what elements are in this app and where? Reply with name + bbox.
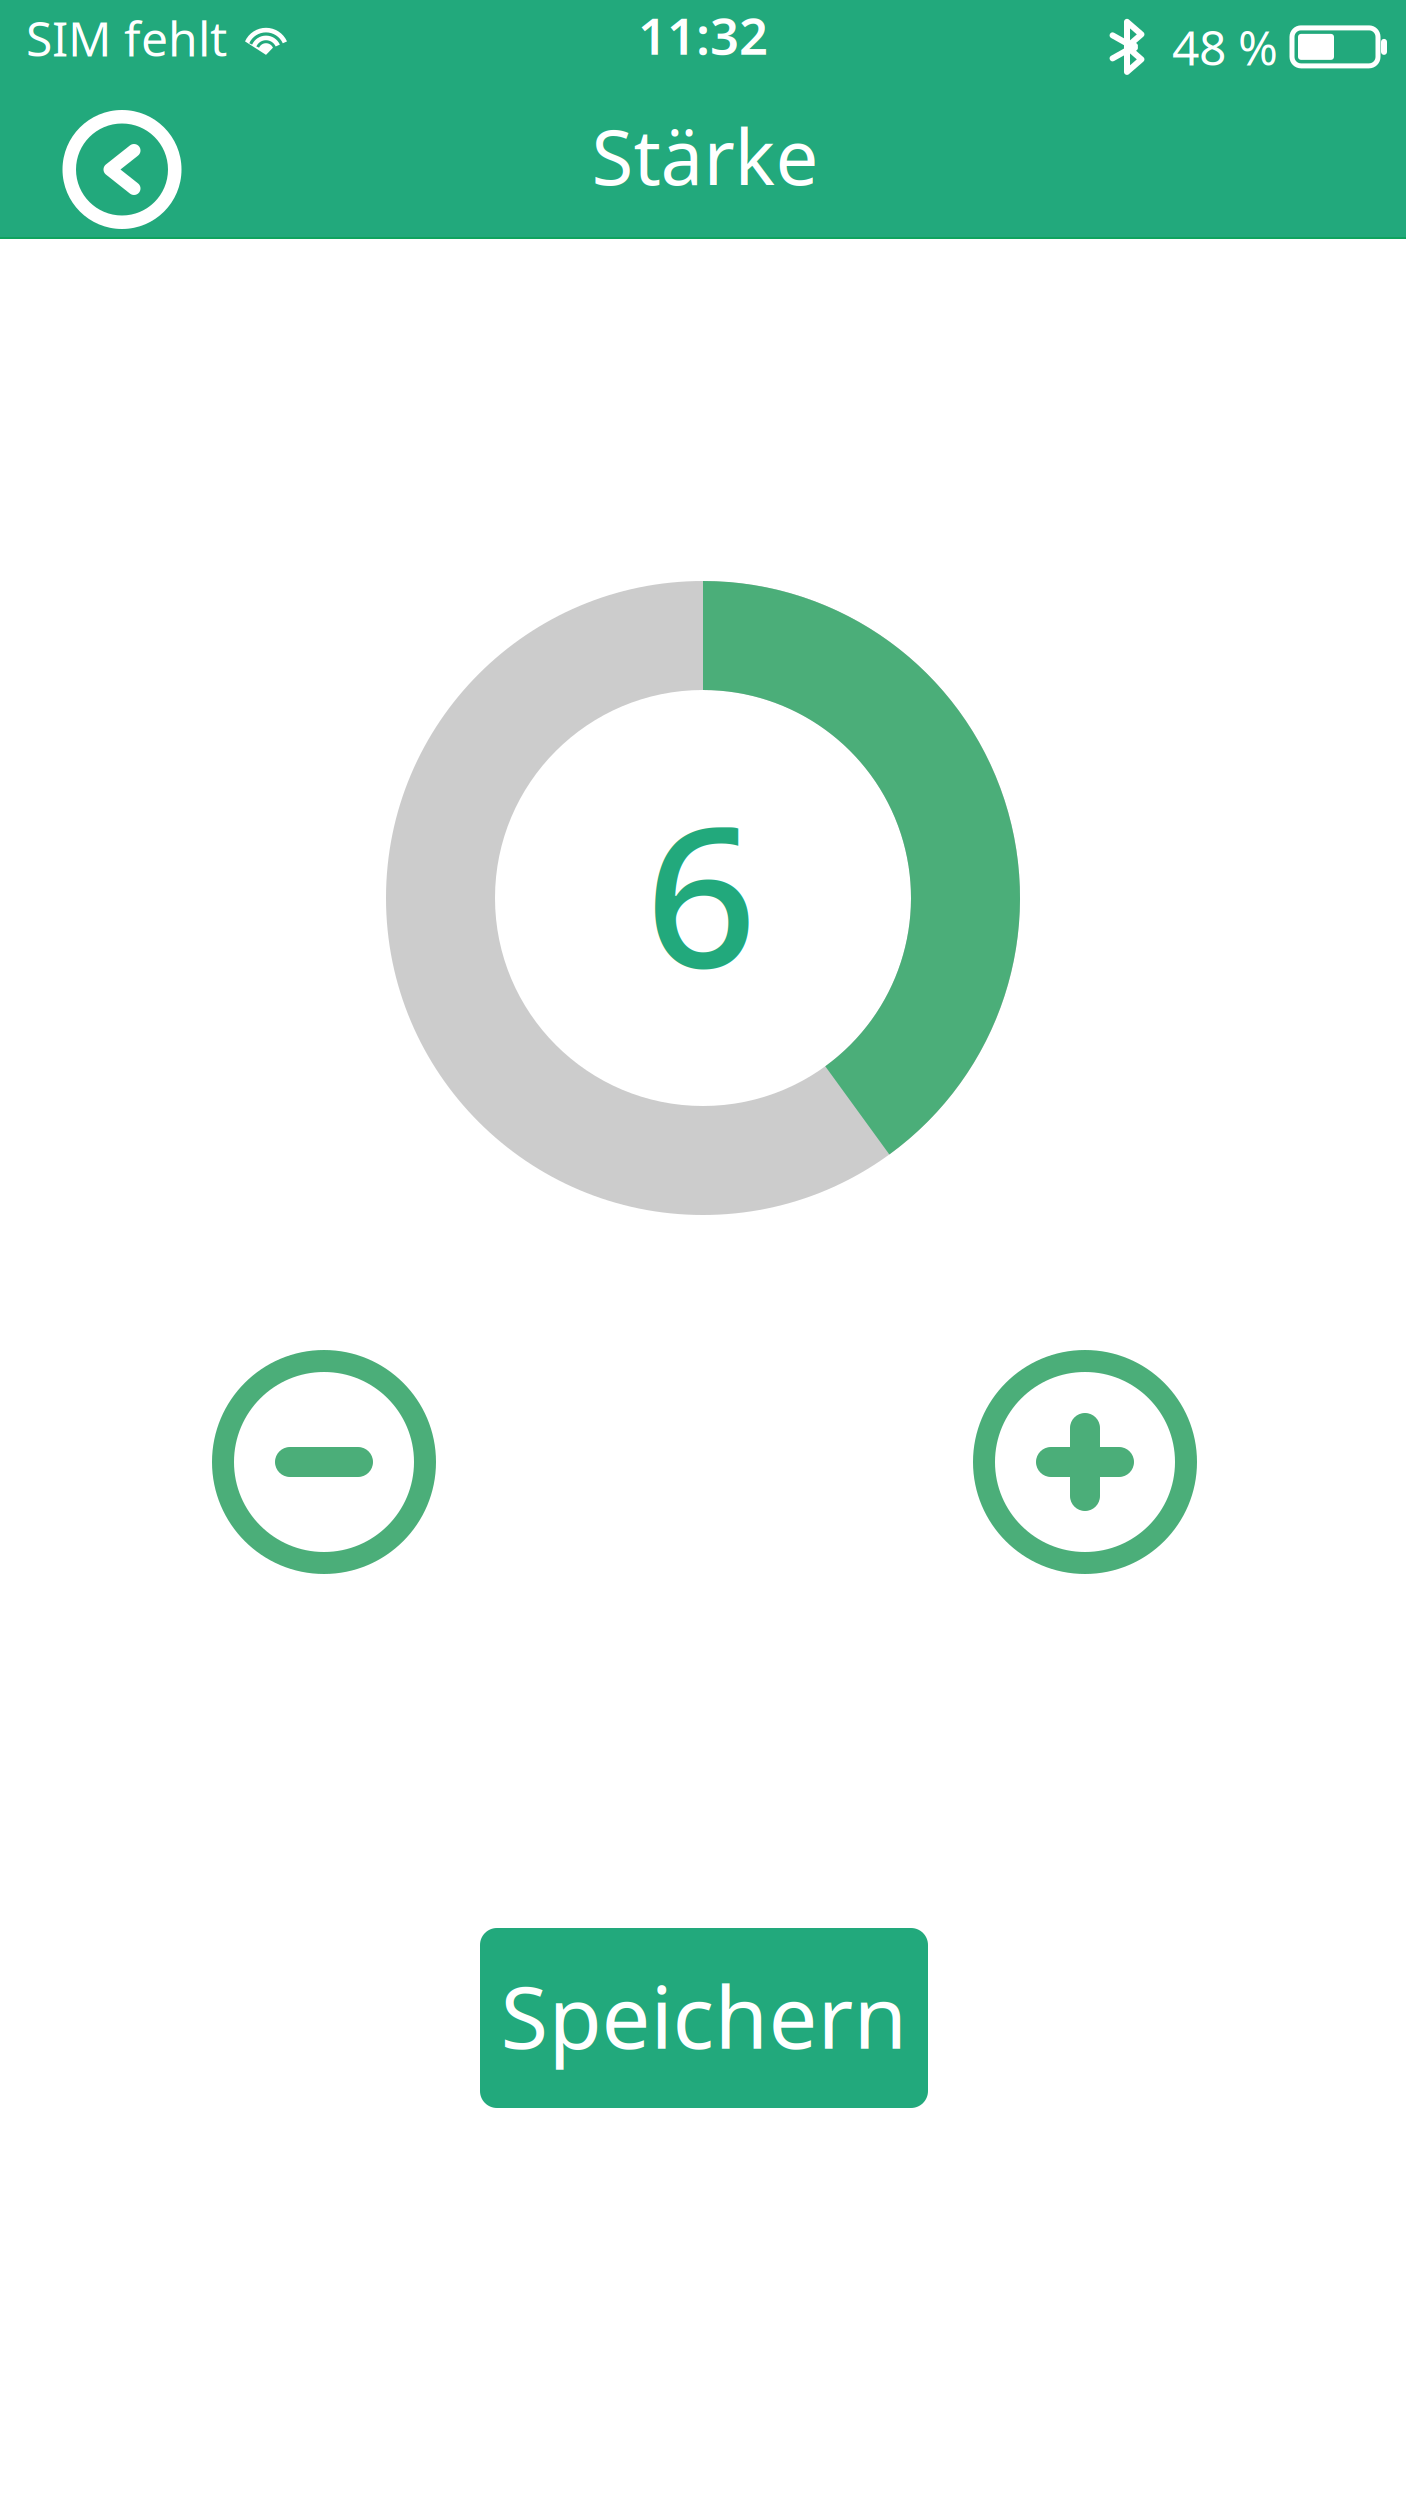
button[interactable]: Back bbox=[63, 99, 183, 219]
staticText: Speichern bbox=[500, 1957, 907, 2073]
staticText: 6 bbox=[645, 763, 756, 1021]
staticText: 48 % bbox=[1172, 15, 1278, 79]
button[interactable]: Decrease bbox=[211, 1349, 437, 1575]
staticText: Stärke bbox=[591, 105, 818, 206]
button[interactable]: Speichern bbox=[480, 1928, 928, 2108]
button[interactable]: Increase bbox=[972, 1349, 1198, 1575]
staticText: 11:32 bbox=[638, 1, 768, 69]
staticText: SIM fehlt bbox=[26, 6, 227, 70]
